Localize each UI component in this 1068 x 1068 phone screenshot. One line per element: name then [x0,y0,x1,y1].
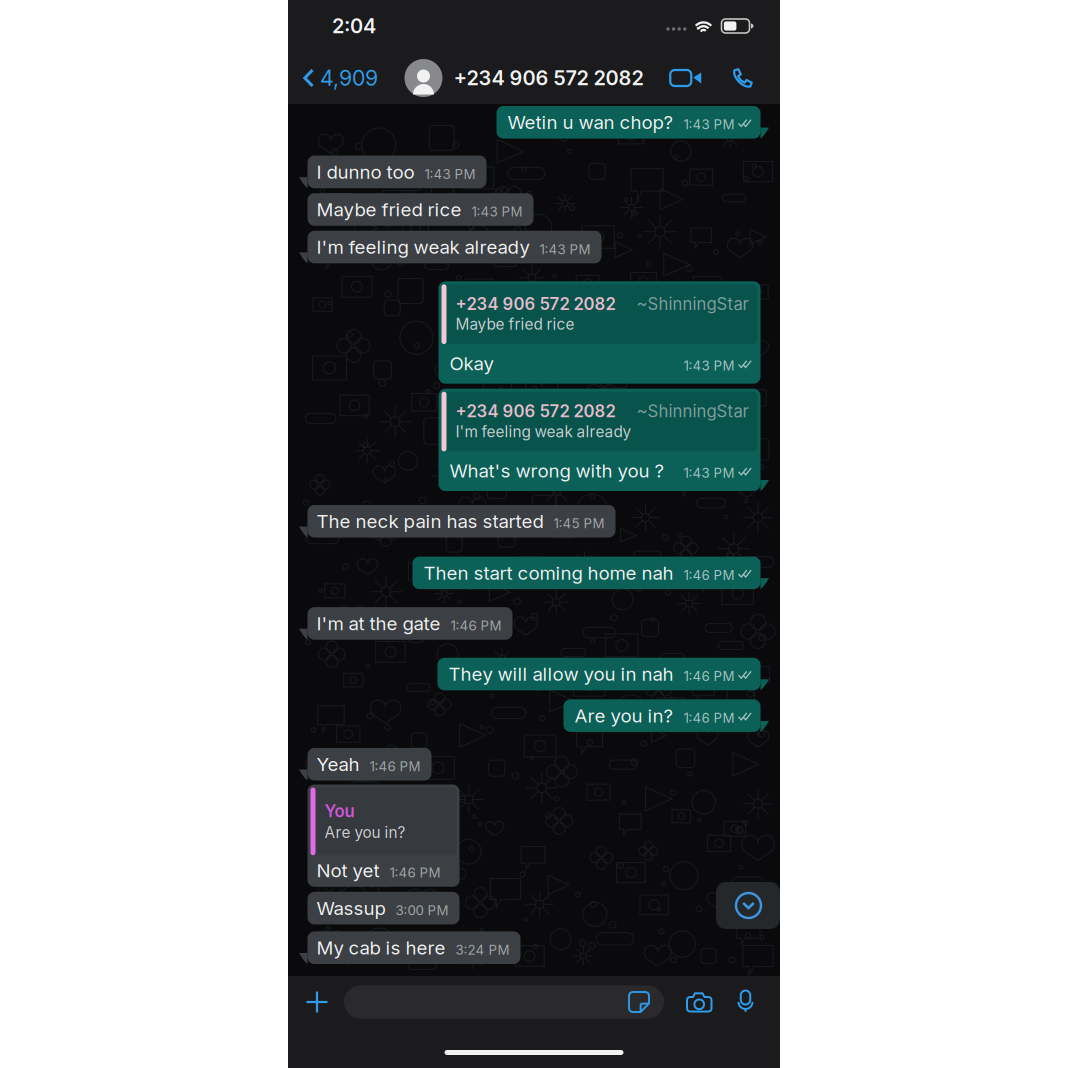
staticText: Wassup [316,897,385,919]
staticText: 1:43 PM [683,116,734,133]
staticText: Are you in? [324,823,405,842]
button[interactable]: Record voice message [737,990,754,1013]
staticText: +234 906 572 2082 [455,294,615,314]
staticText: 3:24 PM [455,942,509,958]
staticText: 1:46 PM [683,567,734,583]
staticText: Wetin u wan chop? [507,111,673,134]
staticText: 1:43 PM [683,465,734,481]
staticText: +234 906 572 2082 [453,66,643,90]
staticText: I'm at the gate [316,612,440,635]
staticText: 1:43 PM [539,241,590,257]
staticText: 1:43 PM [683,357,734,374]
staticText: 1:43 PM [471,204,522,220]
staticText: What's wrong with you ? [449,459,664,482]
staticText: Maybe fried rice [316,198,461,221]
staticText: 3:00 PM [395,902,448,918]
staticText: ~ShinningStar [636,294,748,314]
button[interactable]: Camera [686,991,713,1012]
staticText: Are you in? [574,704,673,727]
button[interactable]: Attach [306,991,328,1013]
staticText: Maybe fried rice [455,315,574,334]
button[interactable]: Voice call [732,68,753,88]
staticText: ~ShinningStar [636,401,748,421]
staticText: I dunno too [316,161,414,183]
staticText: You [324,801,354,821]
staticText: +234 906 572 2082 [455,401,615,421]
staticText: 1:46 PM [683,710,734,726]
staticText: Not yet [316,859,379,882]
staticText: Yeah [316,753,359,775]
staticText: 4,909 [320,65,378,91]
staticText: 1:45 PM [553,515,604,531]
button[interactable]: +234 906 572 2082 [404,59,643,97]
staticText: 1:46 PM [683,668,734,684]
button[interactable]: Scroll to bottom [716,882,780,929]
staticText: They will allow you in nah [448,663,673,685]
staticText: 2:04 [332,14,376,38]
button[interactable]: 4,909 [303,59,378,97]
staticText: My cab is here [316,936,445,959]
staticText: 1:46 PM [450,618,501,634]
button[interactable]: Video call [670,69,702,87]
staticText: The neck pain has started [316,510,543,533]
button[interactable]: Stickers [628,991,650,1013]
staticText: Then start coming home nah [423,562,673,584]
staticText: Okay [449,352,493,375]
staticText: 1:43 PM [424,166,475,182]
staticText: I'm feeling weak already [455,422,631,441]
staticText: 1:46 PM [389,865,440,881]
staticText: 1:46 PM [369,758,420,774]
staticText: I'm feeling weak already [316,236,529,258]
